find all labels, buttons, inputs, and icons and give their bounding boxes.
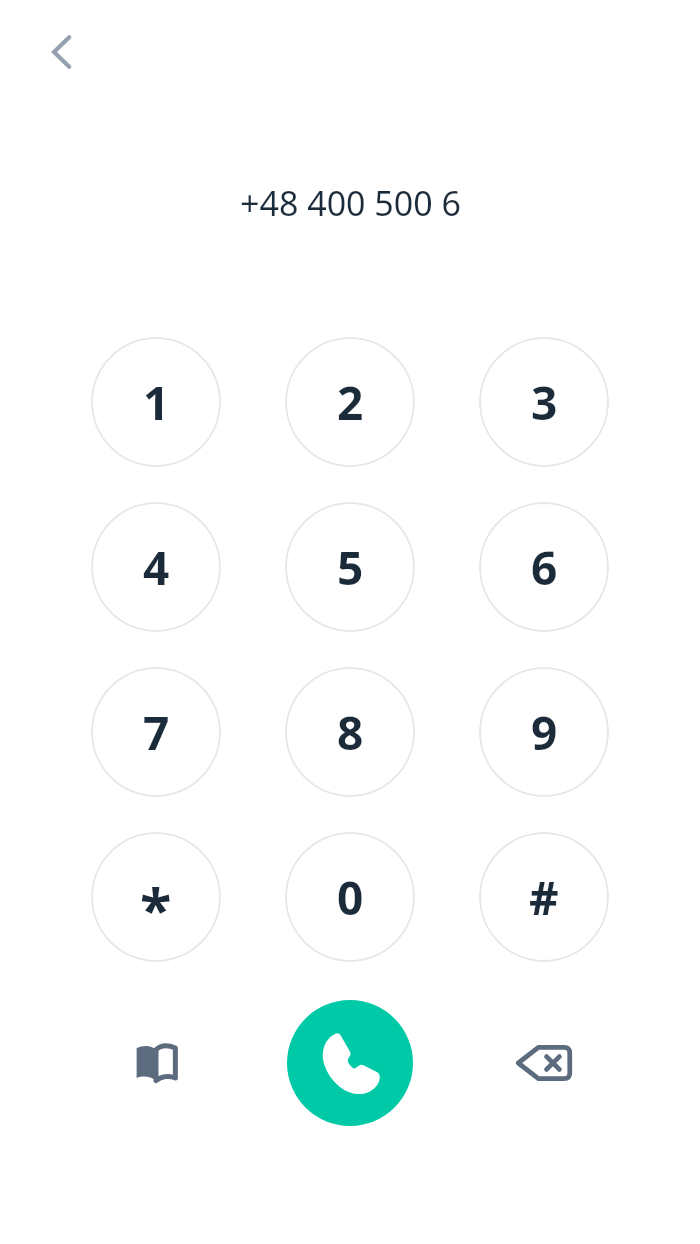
button[interactable]: *	[91, 832, 221, 962]
button[interactable]: 5	[285, 502, 415, 632]
button[interactable]: Contacts	[108, 1015, 204, 1111]
button[interactable]: 3	[479, 337, 609, 467]
staticText: 1	[143, 371, 170, 434]
button[interactable]: Back	[24, 14, 100, 90]
staticText: 8	[337, 701, 364, 764]
staticText: 2	[337, 371, 364, 434]
button[interactable]: 8	[285, 667, 415, 797]
button[interactable]: 2	[285, 337, 415, 467]
staticText: 5	[337, 536, 364, 599]
button[interactable]: 9	[479, 667, 609, 797]
button[interactable]: Backspace	[496, 1015, 592, 1111]
button[interactable]: 6	[479, 502, 609, 632]
button[interactable]: 1	[91, 337, 221, 467]
staticText: #	[529, 866, 559, 929]
staticText: +48 400 500 6	[240, 180, 461, 226]
button[interactable]: 7	[91, 667, 221, 797]
button[interactable]: 0	[285, 832, 415, 962]
button[interactable]: #	[479, 832, 609, 962]
staticText: 7	[143, 701, 170, 764]
button[interactable]: Call	[287, 1000, 413, 1126]
staticText: 3	[531, 371, 558, 434]
staticText: 0	[337, 866, 364, 929]
staticText: 6	[531, 536, 558, 599]
staticText: 4	[143, 536, 170, 599]
staticText: 9	[531, 701, 558, 764]
button[interactable]: 4	[91, 502, 221, 632]
staticText: *	[140, 869, 172, 948]
